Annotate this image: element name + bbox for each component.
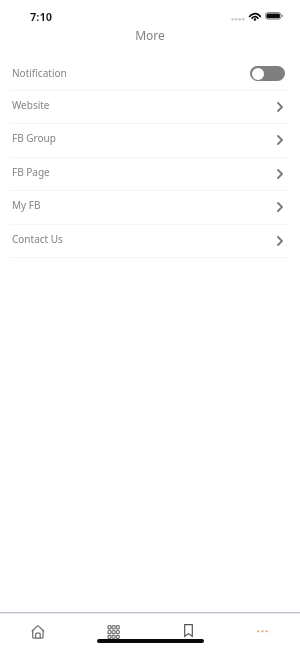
staticText: Website (12, 98, 50, 112)
staticText: FB Page (12, 165, 50, 179)
button[interactable]: Bookmarks (152, 614, 224, 649)
button[interactable]: Website (0, 90, 300, 123)
button[interactable]: FB Group (0, 123, 300, 156)
staticText: My FB (12, 198, 41, 212)
button[interactable]: Home (2, 614, 74, 649)
button[interactable]: FB Page (0, 157, 300, 190)
staticText: Contact Us (12, 232, 63, 246)
button[interactable]: Contact Us (0, 224, 300, 257)
staticText: Notification (12, 66, 67, 80)
staticText: More (135, 27, 165, 43)
button[interactable]: Categories (77, 614, 149, 649)
button[interactable]: More (227, 614, 299, 649)
button[interactable]: Notification (0, 57, 300, 90)
button[interactable]: Notification toggle (250, 66, 285, 81)
staticText: FB Group (12, 131, 56, 145)
button[interactable]: My FB (0, 190, 300, 223)
staticText: 7:10 (30, 9, 52, 24)
